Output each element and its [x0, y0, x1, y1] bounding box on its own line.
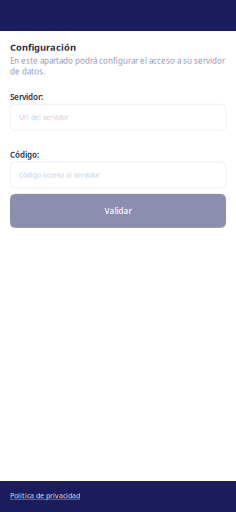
- staticText: En este apartado podrá configurar el acc…: [10, 55, 225, 77]
- staticText: Url del servidor: [19, 113, 69, 122]
- button[interactable]: Validar: [10, 194, 226, 228]
- button[interactable]: Código acceso al servidor: [10, 162, 226, 188]
- staticText: Código acceso al servidor: [19, 170, 100, 179]
- staticText: Configuración: [10, 41, 76, 53]
- button[interactable]: Url del servidor: [10, 104, 226, 130]
- staticText: Validar: [104, 206, 131, 216]
- staticText: Servidor:: [10, 92, 43, 102]
- staticText: Código:: [10, 149, 39, 160]
- staticText: Política de privacidad: [10, 491, 80, 500]
- button[interactable]: Política de privacidad: [0, 486, 86, 507]
